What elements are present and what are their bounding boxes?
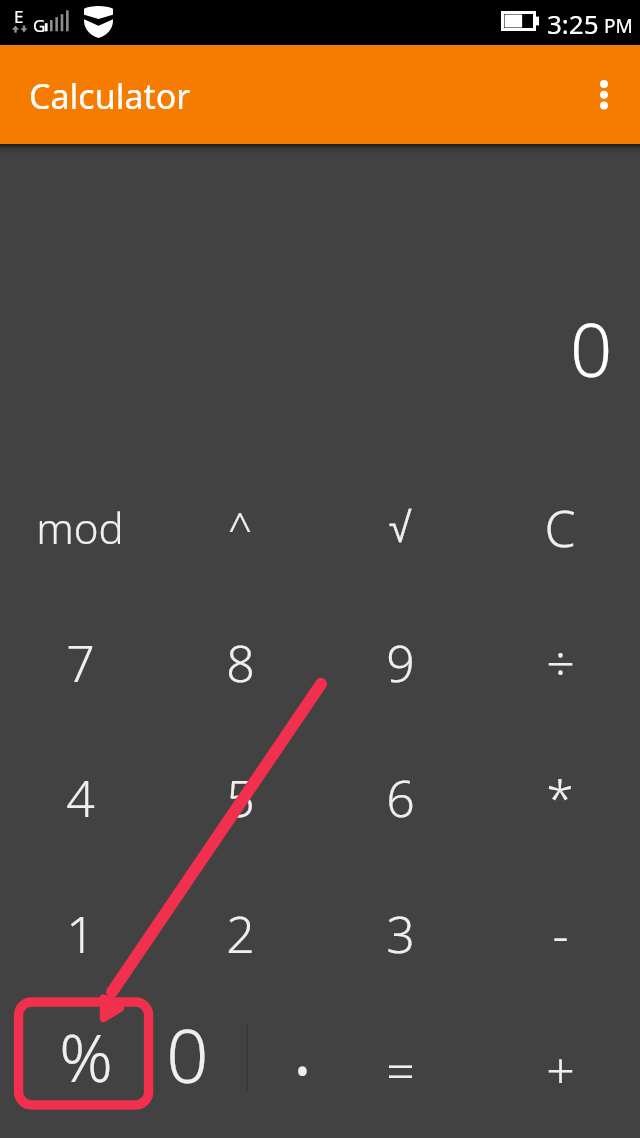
staticText: + (546, 1036, 575, 1104)
button[interactable]: 9 (320, 595, 480, 730)
button[interactable]: mod (0, 460, 160, 595)
button[interactable]: * (480, 730, 640, 866)
button[interactable]: % (0, 1002, 140, 1138)
button[interactable]: + (480, 1002, 640, 1138)
button[interactable]: 1 (0, 866, 160, 1002)
staticText: C (544, 494, 576, 562)
staticText: 4 (66, 764, 95, 832)
staticText: 8 (226, 629, 255, 697)
staticText: mod (36, 499, 124, 556)
button[interactable]: ÷ (480, 595, 640, 730)
staticText: 3:25 (547, 6, 599, 41)
staticText: 1 (66, 900, 95, 968)
staticText: * (546, 764, 574, 832)
staticText: PM (604, 13, 633, 39)
staticText: G (33, 14, 46, 37)
button[interactable]: More options (568, 45, 640, 144)
staticText: ^ (228, 499, 252, 556)
button[interactable]: = (350, 1002, 480, 1138)
staticText: 0 (570, 298, 613, 399)
button[interactable]: 0 (140, 1002, 247, 1138)
staticText: 9 (386, 629, 415, 697)
staticText: Calculator (29, 73, 191, 119)
button[interactable]: ^ (160, 460, 320, 595)
button[interactable]: • (247, 1002, 350, 1138)
staticText: - (552, 900, 569, 968)
button[interactable]: 2 (160, 866, 320, 1002)
staticText: % (59, 1011, 113, 1101)
button[interactable]: 8 (160, 595, 320, 730)
staticText: 3 (386, 900, 415, 968)
button[interactable]: 5 (160, 730, 320, 866)
staticText: √ (388, 504, 412, 551)
button[interactable]: 7 (0, 595, 160, 730)
staticText: 6 (386, 764, 415, 832)
staticText: 0 (166, 1004, 209, 1105)
staticText: 5 (226, 764, 255, 832)
button[interactable]: - (480, 866, 640, 1002)
staticText: • (293, 1036, 312, 1104)
staticText: = (386, 1036, 415, 1104)
staticText: E (14, 5, 24, 28)
button[interactable]: C (480, 460, 640, 595)
button[interactable]: 3 (320, 866, 480, 1002)
staticText: ÷ (546, 629, 575, 697)
staticText: 7 (66, 629, 95, 697)
button[interactable]: 6 (320, 730, 480, 866)
staticText: 2 (226, 900, 255, 968)
button[interactable]: √ (320, 460, 480, 595)
button[interactable]: 4 (0, 730, 160, 866)
